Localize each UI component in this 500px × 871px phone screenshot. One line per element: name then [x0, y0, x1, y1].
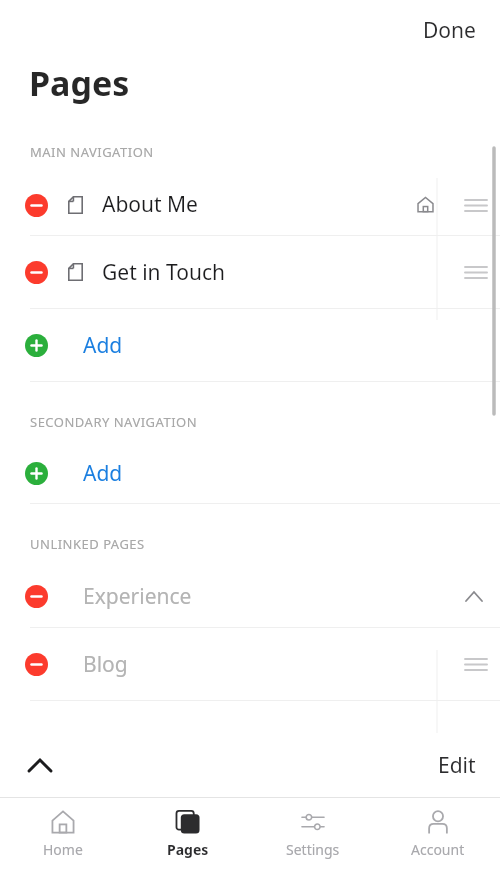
staticText: Get in Touch	[102, 258, 225, 287]
button[interactable]: Settings	[250, 798, 375, 871]
button[interactable]: Remove	[16, 644, 56, 684]
button[interactable]: Remove	[16, 185, 56, 225]
staticText: SECONDARY NAVIGATION	[30, 413, 198, 431]
staticText: Account	[411, 840, 465, 859]
staticText: Pages	[29, 60, 130, 106]
button[interactable]: Reorder	[452, 644, 500, 684]
button[interactable]: Edit	[430, 745, 484, 786]
staticText: Add	[83, 459, 123, 488]
staticText: Add	[83, 331, 123, 360]
button[interactable]: Pages	[125, 798, 250, 871]
button[interactable]: Add item	[0, 309, 500, 381]
staticText: MAIN NAVIGATION	[30, 143, 154, 161]
button[interactable]: Account	[375, 798, 500, 871]
staticText: Settings	[286, 840, 340, 859]
button[interactable]: Add item	[16, 325, 56, 365]
button[interactable]: Done	[415, 10, 484, 51]
button[interactable]: Remove	[0, 174, 500, 235]
staticText: Experience	[83, 582, 192, 611]
button[interactable]: Collapse	[454, 576, 494, 616]
button[interactable]: Expand	[16, 741, 64, 789]
button[interactable]: Add item	[16, 453, 56, 493]
staticText: Home	[43, 840, 83, 859]
staticText: UNLINKED PAGES	[30, 535, 145, 553]
button[interactable]: Home	[0, 798, 125, 871]
other: Home page	[417, 196, 434, 213]
button[interactable]: Remove	[0, 236, 500, 308]
button[interactable]: Reorder	[452, 185, 500, 225]
staticText: Pages	[167, 840, 209, 859]
staticText: About Me	[102, 190, 198, 219]
staticText: Edit	[438, 751, 476, 780]
staticText: Done	[423, 16, 476, 45]
button[interactable]: Remove	[0, 565, 500, 627]
button[interactable]: Add item	[0, 443, 500, 503]
button[interactable]: Remove	[16, 576, 56, 616]
button[interactable]: Remove	[0, 628, 500, 700]
button[interactable]: Reorder	[452, 252, 500, 292]
staticText: Blog	[83, 650, 128, 679]
button[interactable]: Remove	[16, 252, 56, 292]
